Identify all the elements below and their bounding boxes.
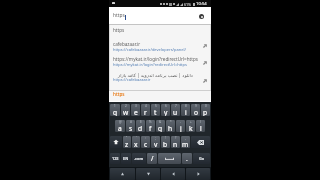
button[interactable]: ' <box>132 136 140 148</box>
button[interactable]: Shift <box>110 136 122 148</box>
staticText: r <box>144 108 147 116</box>
button[interactable]: Left <box>161 168 185 180</box>
button[interactable]: , <box>181 136 190 148</box>
button[interactable]: 1 <box>110 104 120 116</box>
button[interactable]: 5 <box>151 104 160 116</box>
button[interactable]: EN <box>121 153 131 164</box>
button[interactable]: 4 <box>141 104 150 116</box>
button[interactable]: ; <box>151 136 160 148</box>
button[interactable]: Use suggestion <box>203 44 207 48</box>
staticText: j <box>180 124 182 132</box>
staticText: 5 <box>155 104 157 108</box>
button[interactable]: 0 <box>201 104 210 116</box>
staticText: & <box>159 120 162 124</box>
button[interactable]: https <box>109 91 211 101</box>
staticText: https <box>113 27 125 33</box>
button[interactable]: Use suggestion <box>203 61 207 65</box>
button[interactable]: cafebazaar.ir <box>109 37 211 54</box>
button[interactable]: Space <box>158 153 181 164</box>
staticText: EN <box>123 156 129 161</box>
staticText: 4 <box>145 104 147 108</box>
button[interactable]: https <box>109 25 211 37</box>
staticText: z <box>125 140 129 148</box>
staticText: " <box>126 136 128 140</box>
staticText: - <box>180 120 181 124</box>
staticText: e <box>134 108 138 116</box>
button[interactable]: 2 <box>121 104 130 116</box>
staticText: دانلود | نصب برنامه اندروید | کافه بازار <box>118 72 193 78</box>
staticText: 2 <box>125 104 127 108</box>
staticText: https://mykat.ir/login?redirectUrl=https… <box>113 56 199 62</box>
button[interactable]: Go <box>193 153 210 164</box>
button[interactable]: % <box>146 120 155 132</box>
staticText: o <box>194 108 198 116</box>
staticText: $ <box>140 120 142 124</box>
staticText: . <box>186 154 188 163</box>
staticText: ' <box>136 136 137 140</box>
staticText: g <box>158 124 163 132</box>
button[interactable]: & <box>156 120 165 132</box>
staticText: 1 <box>114 104 116 108</box>
staticText: 8 <box>185 104 187 108</box>
button[interactable]: دانلود | نصب برنامه اندروید | کافه بازار <box>109 71 211 90</box>
staticText: # <box>130 120 132 124</box>
staticText: t <box>154 108 157 116</box>
staticText: 6 <box>165 104 167 108</box>
staticText: s <box>129 124 133 132</box>
staticText: y <box>164 108 168 116</box>
button[interactable]: Right <box>186 168 210 180</box>
staticText: + <box>190 120 192 124</box>
staticText: n <box>173 140 178 148</box>
staticText: ( <box>200 120 201 124</box>
button[interactable]: $ <box>136 120 145 132</box>
button[interactable]: ? <box>171 136 180 148</box>
button[interactable]: - <box>176 120 185 132</box>
staticText: 7 <box>175 104 177 108</box>
button[interactable]: Down <box>136 168 160 180</box>
staticText: 0 <box>205 104 207 108</box>
button[interactable]: Use suggestion <box>203 79 207 83</box>
staticText: % <box>149 120 152 124</box>
button[interactable]: : <box>141 136 150 148</box>
staticText: cafebazaar.ir <box>113 41 141 47</box>
staticText: / <box>151 154 154 163</box>
staticText: c <box>144 140 148 148</box>
button[interactable]: 3 <box>131 104 140 116</box>
staticText: https <box>113 12 125 19</box>
staticText: v <box>154 140 158 148</box>
button[interactable]: 7 <box>171 104 180 116</box>
button[interactable]: / <box>147 153 157 164</box>
staticText: ; <box>155 136 156 140</box>
staticText: 10:54 <box>196 1 207 7</box>
button[interactable]: . <box>182 153 192 164</box>
staticText: q <box>113 108 118 116</box>
button[interactable]: Backspace <box>191 136 210 148</box>
staticText: a <box>118 124 122 132</box>
button[interactable]: ! <box>161 136 170 148</box>
button[interactable]: 6 <box>161 104 170 116</box>
button[interactable]: https <box>109 7 211 24</box>
button[interactable]: * <box>166 120 175 132</box>
staticText: .com <box>134 156 144 161</box>
staticText: f <box>149 124 152 132</box>
staticText: w <box>123 108 129 116</box>
staticText: https://cafebazaar.ir <box>113 77 151 82</box>
staticText: p <box>203 108 208 116</box>
button[interactable]: Clear <box>199 14 204 19</box>
staticText: Go <box>199 156 205 161</box>
staticText: ! <box>165 136 166 140</box>
staticText: * <box>170 120 172 124</box>
button[interactable]: .com <box>132 153 146 164</box>
button[interactable]: 8 <box>181 104 190 116</box>
button[interactable]: Up <box>110 168 135 180</box>
button[interactable]: 9 <box>191 104 200 116</box>
button[interactable]: ( <box>196 120 205 132</box>
button[interactable]: @ <box>115 120 125 132</box>
button[interactable]: + <box>186 120 195 132</box>
button[interactable]: https://mykat.ir/login?redirectUrl=https… <box>109 54 211 71</box>
staticText: h <box>168 124 173 132</box>
button[interactable]: 123 <box>110 153 120 164</box>
staticText: k <box>189 124 193 132</box>
button[interactable]: " <box>123 136 131 148</box>
button[interactable]: # <box>126 120 135 132</box>
